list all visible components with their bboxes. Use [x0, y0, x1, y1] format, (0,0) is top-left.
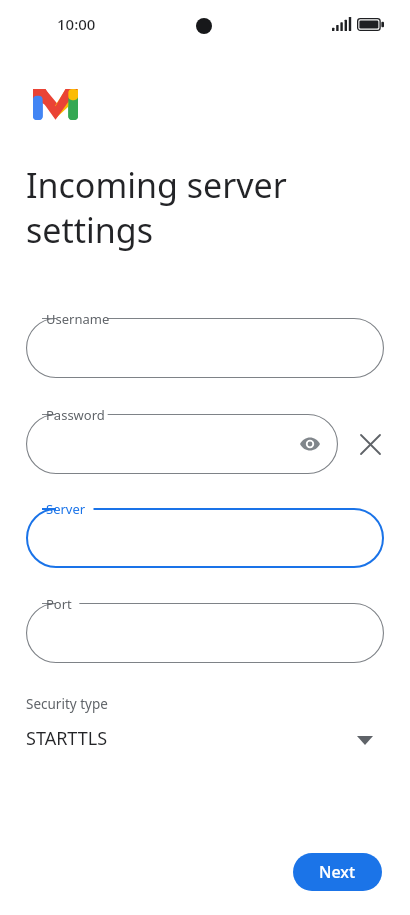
staticText: Next [319, 861, 356, 883]
staticText: Server [46, 500, 86, 518]
button[interactable]: Next [293, 853, 382, 891]
other: Gmail [33, 89, 78, 120]
staticText: STARTTLS [26, 726, 108, 751]
button[interactable] [26, 318, 384, 378]
staticText: Incoming server settings [26, 162, 386, 252]
button[interactable]: Security type [0, 686, 410, 762]
staticText: Port [46, 595, 72, 613]
button[interactable]: Show password [290, 424, 330, 464]
staticText: 10:00 [57, 14, 96, 34]
staticText: Security type [26, 695, 108, 713]
button[interactable]: Clear password [350, 424, 390, 464]
staticText: Password [46, 406, 105, 424]
button[interactable] [26, 603, 384, 663]
button[interactable]: Show password [26, 414, 338, 474]
button[interactable] [26, 508, 384, 568]
staticText: Username [46, 310, 110, 328]
